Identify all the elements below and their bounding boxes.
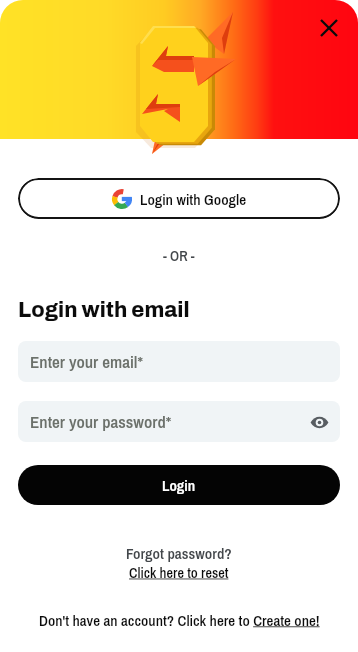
staticText: Forgot password?	[126, 543, 232, 564]
button[interactable]: Login	[18, 465, 340, 505]
staticText: Enter your email*	[30, 350, 143, 373]
button[interactable]: Don't have an account? Click here to Cre…	[39, 610, 320, 630]
staticText: Login	[162, 475, 196, 496]
button[interactable]: Enter your email*	[18, 341, 340, 382]
button[interactable]: Close	[313, 12, 345, 44]
button[interactable]: Show password	[305, 408, 333, 436]
staticText: Login with Google	[140, 189, 247, 209]
staticText: Login with email	[18, 298, 190, 321]
button[interactable]: Enter your password*	[18, 401, 340, 442]
button[interactable]: Click here to reset	[129, 563, 229, 582]
staticText: Enter your password*	[30, 410, 172, 433]
staticText: - OR -	[163, 246, 195, 265]
button[interactable]: Login with Google	[18, 178, 340, 219]
